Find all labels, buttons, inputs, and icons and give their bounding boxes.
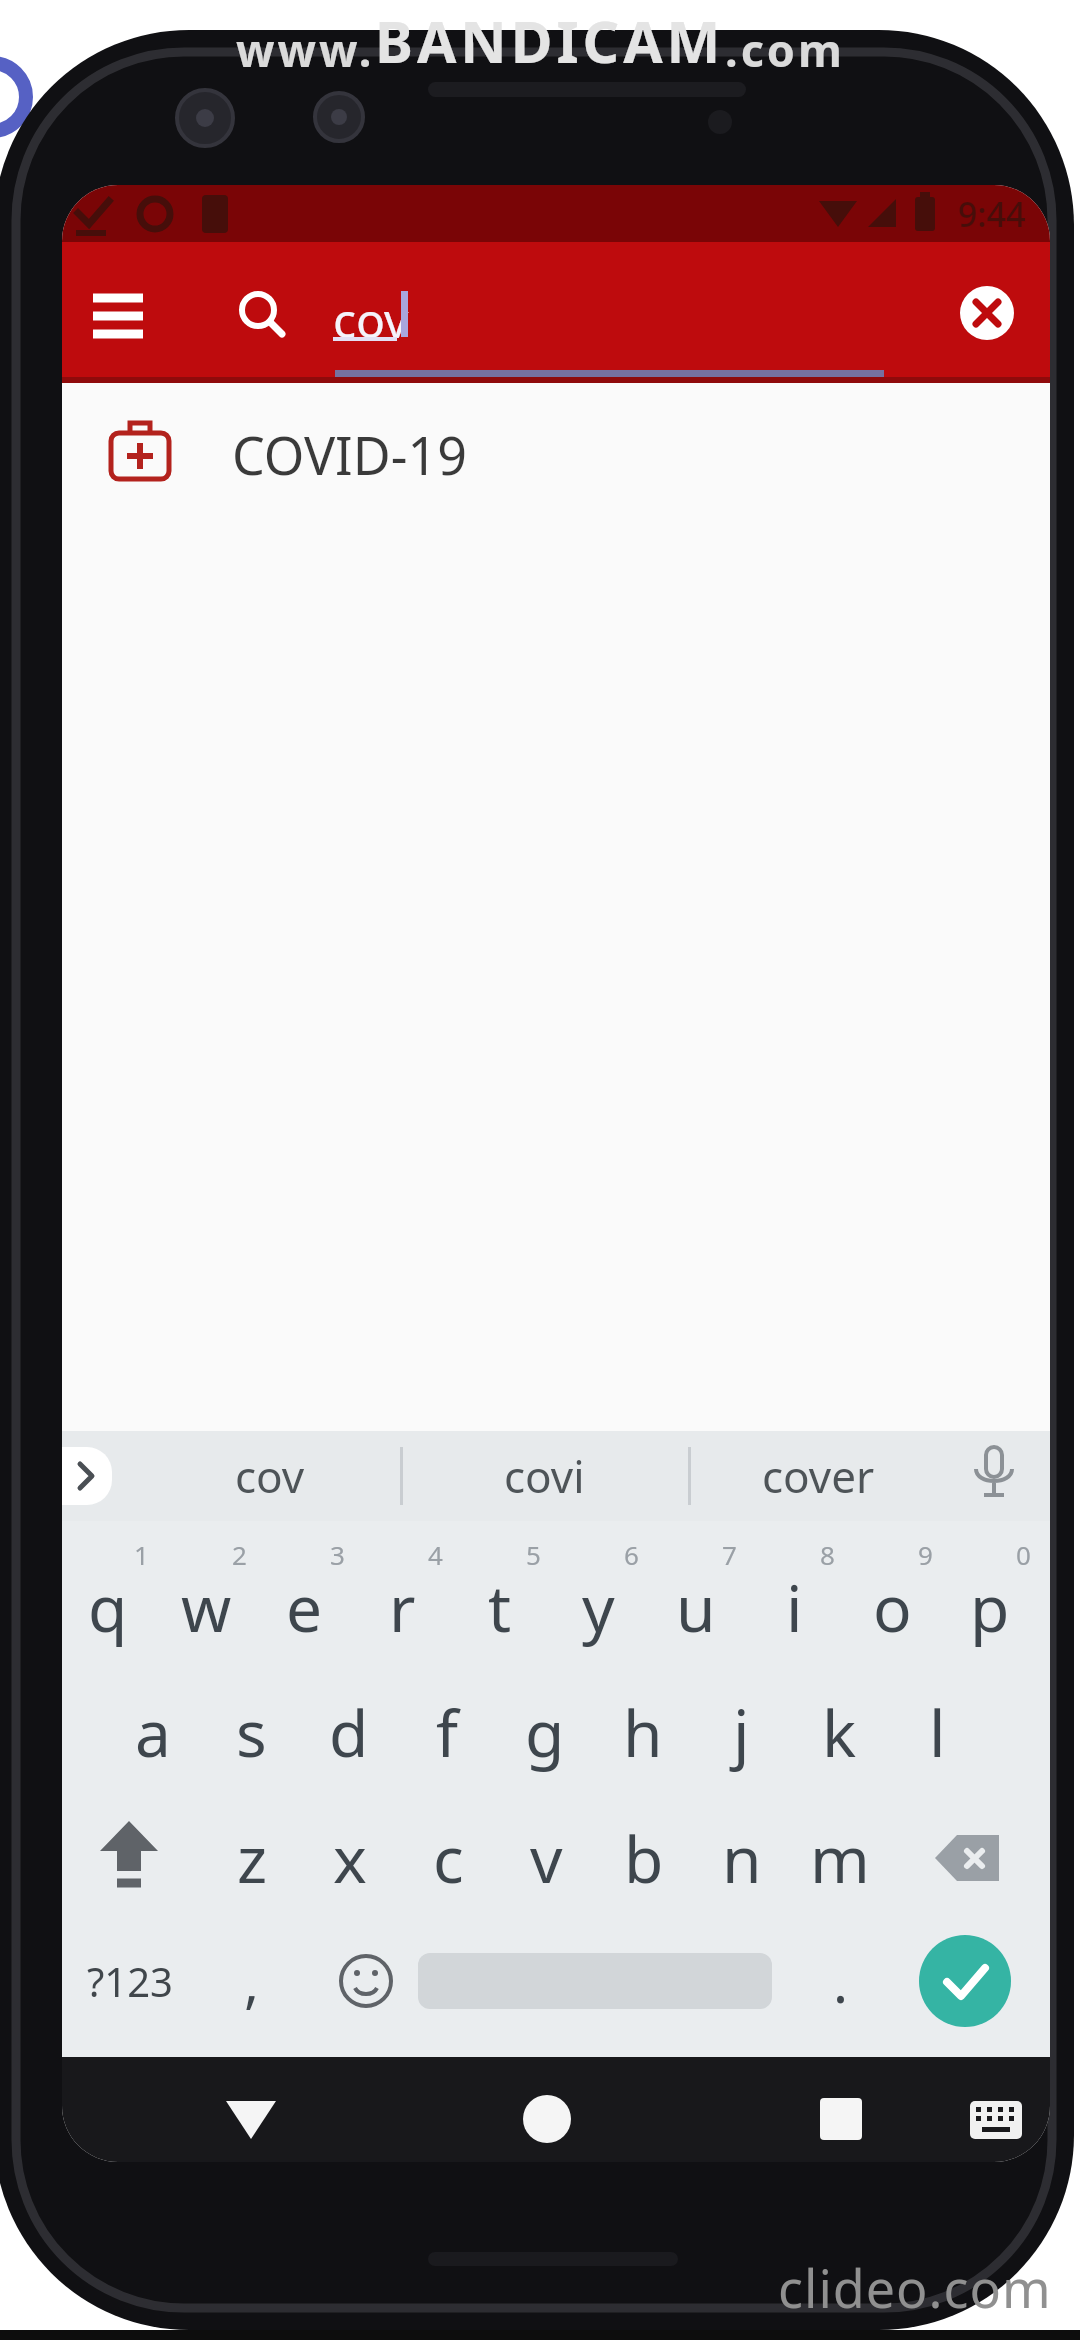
staticText: f [436,1689,459,1776]
staticText: 2 [232,1537,247,1571]
staticText: g [525,1689,565,1776]
staticText: ?123 [87,1954,173,2008]
button[interactable]: COVID-19 [62,383,1050,508]
button[interactable]: d [301,1677,397,1787]
button[interactable]: , [212,1936,292,2026]
staticText: covi [504,1446,585,1506]
button[interactable]: g [497,1677,593,1787]
staticText: 4 [428,1537,443,1571]
staticText: COVID-19 [232,419,467,490]
button[interactable]: a [105,1677,201,1787]
button[interactable]: l [889,1677,985,1787]
button[interactable]: cov [200,1431,340,1521]
staticText: e [286,1564,323,1651]
button[interactable] [82,278,154,350]
button[interactable]: t [452,1552,548,1662]
button[interactable]: . [801,1936,881,2026]
staticText: d [329,1689,369,1776]
staticText: n [722,1815,762,1902]
staticText: . [833,1943,849,2019]
staticText: m [810,1815,870,1902]
staticText: s [236,1689,267,1776]
staticText: v [530,1815,563,1902]
button[interactable]: e [256,1552,352,1662]
staticText: 5 [526,1537,541,1571]
staticText: 9:44 [958,191,1026,237]
staticText: x [333,1815,367,1902]
button[interactable] [206,2087,296,2157]
button[interactable] [62,1447,112,1505]
staticText: a [135,1689,171,1776]
button[interactable] [960,286,1014,340]
button[interactable]: o [844,1552,940,1662]
staticText: clideo.com [778,2252,1052,2323]
button[interactable] [796,2087,886,2157]
staticText: o [873,1564,912,1651]
button[interactable] [962,2089,1030,2153]
button[interactable]: k [791,1677,887,1787]
staticText: c [433,1815,464,1902]
button[interactable]: m [792,1803,888,1913]
button[interactable]: h [595,1677,691,1787]
staticText: z [237,1815,268,1902]
staticText: b [624,1815,664,1902]
staticText: l [929,1689,946,1776]
staticText: 7 [722,1537,737,1571]
button[interactable] [326,1946,406,2016]
staticText: k [822,1689,857,1776]
button[interactable]: w [158,1552,254,1662]
button[interactable]: n [694,1803,790,1913]
button[interactable]: b [596,1803,692,1913]
button[interactable]: p [942,1552,1038,1662]
staticText: h [623,1689,663,1776]
staticText: 0 [1016,1537,1031,1571]
staticText: , [244,1943,260,2019]
button[interactable]: i [746,1552,842,1662]
staticText: j [733,1689,750,1776]
staticText: 1 [134,1537,149,1571]
button[interactable]: q [62,1552,156,1662]
staticText: t [488,1564,512,1651]
staticText: q [88,1564,128,1651]
staticText: p [970,1564,1010,1651]
staticText: i [786,1564,803,1651]
staticText: 8 [820,1537,835,1571]
button[interactable] [919,1935,1011,2027]
button[interactable] [84,1813,174,1903]
staticText: y [582,1564,615,1651]
button[interactable]: c [400,1803,496,1913]
staticText: w [181,1564,232,1651]
staticText: 3 [330,1537,345,1571]
staticText: u [676,1564,716,1651]
staticText: 6 [624,1537,639,1571]
button[interactable] [917,1813,1013,1903]
staticText: 9 [918,1537,933,1571]
button[interactable]: v [498,1803,594,1913]
button[interactable]: j [693,1677,789,1787]
button[interactable]: z [204,1803,300,1913]
button[interactable] [962,1439,1026,1513]
staticText: cov [235,1446,305,1506]
button[interactable]: y [550,1552,646,1662]
button[interactable]: s [203,1677,299,1787]
staticText: cov [333,287,409,352]
button[interactable]: cov [322,265,882,365]
button[interactable]: x [302,1803,398,1913]
button[interactable]: cover [738,1431,898,1521]
button[interactable]: ?123 [80,1936,180,2026]
staticText: BANDICAM [375,2,725,80]
button[interactable]: covi [474,1431,614,1521]
staticText: www. [236,19,375,80]
staticText: r [389,1564,416,1651]
button[interactable]: r [354,1552,450,1662]
staticText: .com [725,19,845,80]
button[interactable] [502,2087,592,2157]
staticText: cover [762,1446,875,1506]
button[interactable]: f [399,1677,495,1787]
button[interactable]: u [648,1552,744,1662]
